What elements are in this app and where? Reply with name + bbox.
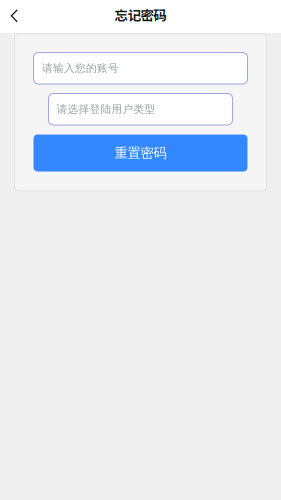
button[interactable]: 请输入您的账号 [33, 52, 247, 84]
staticText: 请输入您的账号 [42, 62, 119, 75]
button[interactable]: 重置密码 [33, 134, 247, 171]
staticText: 忘记密码 [114, 5, 166, 24]
staticText: 请选择登陆用户类型 [56, 103, 155, 116]
staticText: 重置密码 [114, 145, 166, 161]
button[interactable]: Back [0, 0, 29, 34]
button[interactable]: 请选择登陆用户类型 [48, 93, 232, 125]
